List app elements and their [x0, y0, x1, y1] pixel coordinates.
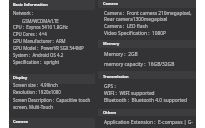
staticText: Screen Description : Capacitive touch — [13, 97, 91, 103]
staticText: Transmission — [103, 74, 129, 79]
staticText: Specification : upright — [13, 59, 60, 65]
staticText: CPU Cores : 4+4 — [13, 31, 47, 37]
staticText: GSM/WCDMA/LTE — [22, 18, 59, 24]
staticText: CPU : Exynos 5410 1.8GHz — [13, 24, 68, 30]
staticText: Resolution : 1920x1080 — [13, 89, 61, 95]
staticText: Camera : Front camera 210megapixel, — [104, 10, 192, 17]
staticText: GPU Manufacturer : ARM — [13, 38, 66, 44]
staticText: Bluetooth : Bluetooth 4.0 supported — [104, 97, 188, 104]
button[interactable]: Camera — [98, 0, 196, 8]
staticText: Camera — [13, 119, 28, 124]
staticText: System : Android OS 4.2 — [13, 52, 64, 58]
staticText: Camera : LED flash — [104, 23, 148, 30]
button[interactable]: Basic Information — [9, 0, 95, 10]
button[interactable]: Display — [9, 74, 95, 84]
staticText: WIFI : WIFI supported — [104, 90, 155, 97]
button[interactable]: Others — [98, 109, 196, 116]
button[interactable]: Camera — [9, 118, 95, 128]
staticText: Memory — [103, 41, 120, 46]
button[interactable]: Memory — [98, 40, 196, 48]
staticText: screen, Multi-Touch — [13, 104, 54, 110]
staticText: Rear camera1300megapixel — [104, 16, 168, 23]
staticText: memory capacity : 16GB/32GB — [104, 61, 175, 68]
staticText: Camera — [103, 1, 118, 6]
staticText: GPU Model : PowerVR SGX 544MP — [13, 45, 84, 51]
staticText: Network : — [13, 10, 33, 16]
staticText: Screen size : 4.99inch — [13, 82, 58, 88]
staticText: Others — [103, 110, 117, 115]
staticText: Application Extension : E-compass | G- — [104, 119, 193, 126]
staticText: Basic Information — [13, 2, 48, 7]
staticText: Memory : 2GB — [104, 51, 138, 58]
staticText: Video Specification : 1080P — [104, 30, 166, 37]
staticText: Display — [13, 75, 28, 80]
button[interactable]: Transmission — [98, 71, 196, 79]
staticText: GPS : — [104, 83, 116, 90]
